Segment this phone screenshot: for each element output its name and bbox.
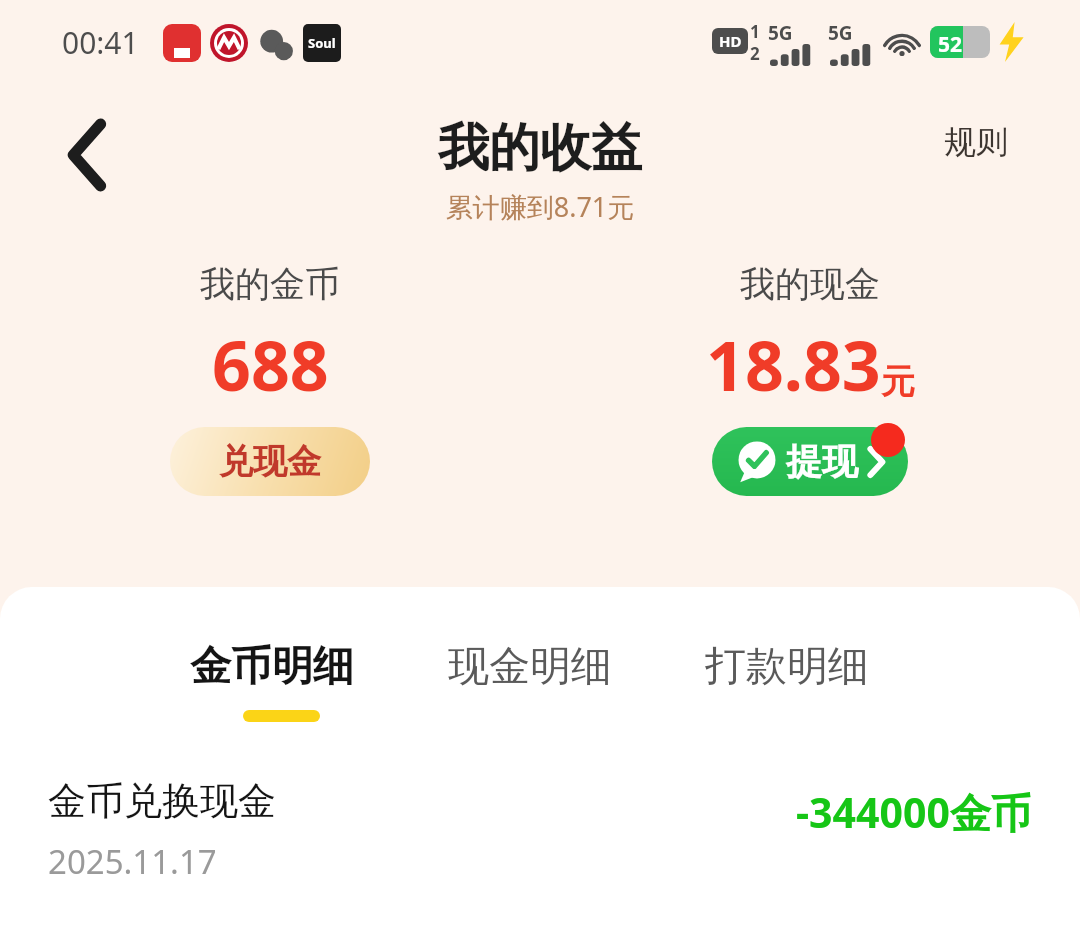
button[interactable]: 金币兑换现金	[0, 765, 1080, 895]
button[interactable]: 兑现金	[170, 427, 370, 496]
staticText: 688	[212, 318, 329, 411]
staticText: 18.83	[706, 318, 881, 411]
button[interactable]: 规则	[944, 122, 1008, 162]
staticText: 金币兑换现金	[48, 777, 276, 825]
staticText: -344000金币	[796, 784, 1032, 840]
staticText: 打款明细	[705, 641, 869, 693]
staticText: 5G	[768, 20, 793, 46]
staticText: 我的收益	[0, 116, 1080, 180]
button[interactable]: 现金明细	[448, 641, 612, 693]
staticText: 2025.11.17	[48, 839, 217, 884]
staticText: 5G	[828, 20, 853, 46]
button[interactable]: 提现	[712, 427, 908, 496]
staticText: 金币明细	[190, 641, 354, 693]
staticText: 累计赚到8.71元	[0, 188, 1080, 225]
staticText: 00:41	[62, 22, 139, 63]
button[interactable]: 金币明细	[190, 641, 354, 693]
staticText: 规则	[944, 122, 1008, 162]
button[interactable]: Back	[42, 110, 132, 200]
staticText: 1	[750, 20, 760, 43]
staticText: 我的现金	[740, 262, 880, 306]
button[interactable]: 打款明细	[705, 641, 869, 693]
staticText: 元	[881, 360, 915, 403]
staticText: Soul	[308, 34, 336, 52]
staticText: 提现	[786, 439, 858, 484]
staticText: 兑现金	[219, 440, 321, 483]
staticText: 52	[938, 30, 963, 59]
staticText: 我的金币	[200, 262, 340, 306]
staticText: 现金明细	[448, 641, 612, 693]
staticText: HD	[719, 31, 742, 51]
staticText: 2	[750, 42, 760, 65]
